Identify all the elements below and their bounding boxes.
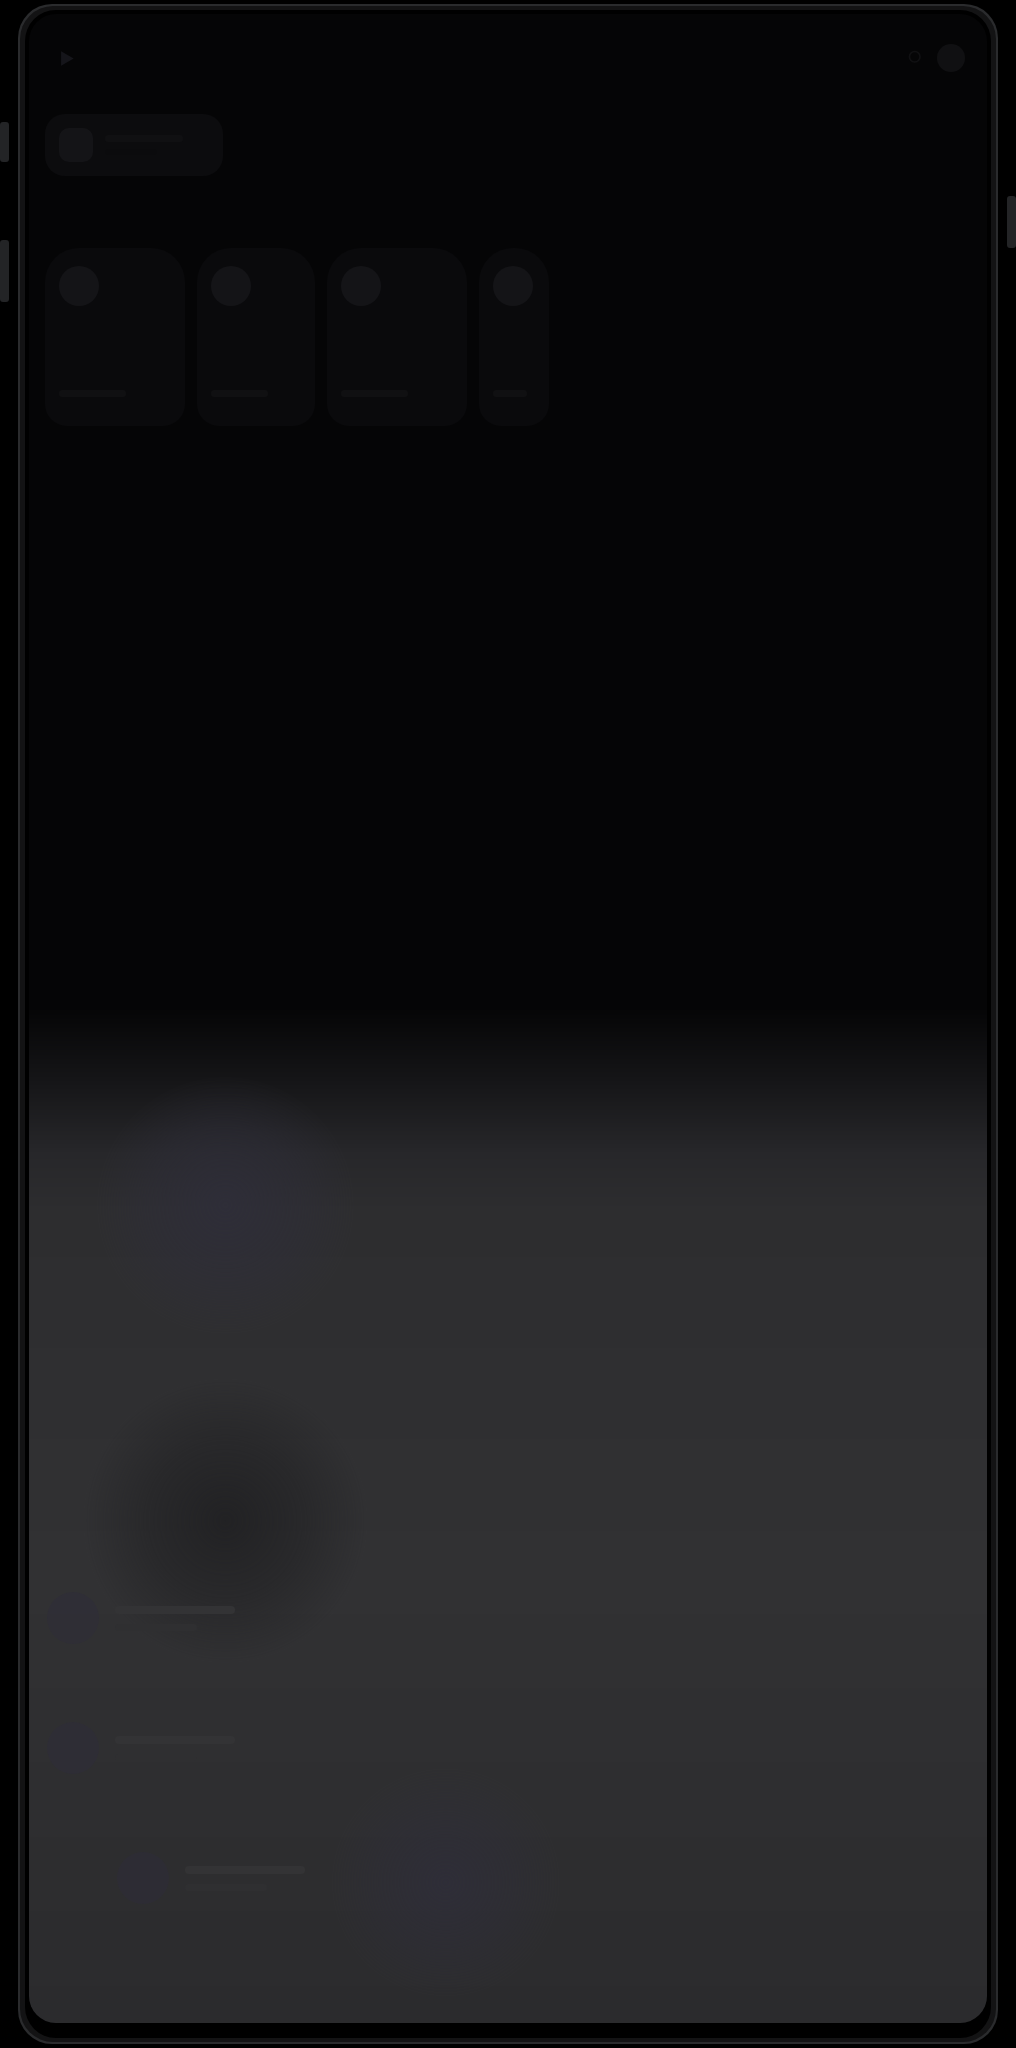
button[interactable]: Account (937, 44, 965, 72)
button[interactable]: App logo (51, 43, 81, 73)
button[interactable] (45, 114, 223, 176)
button[interactable] (479, 248, 549, 426)
